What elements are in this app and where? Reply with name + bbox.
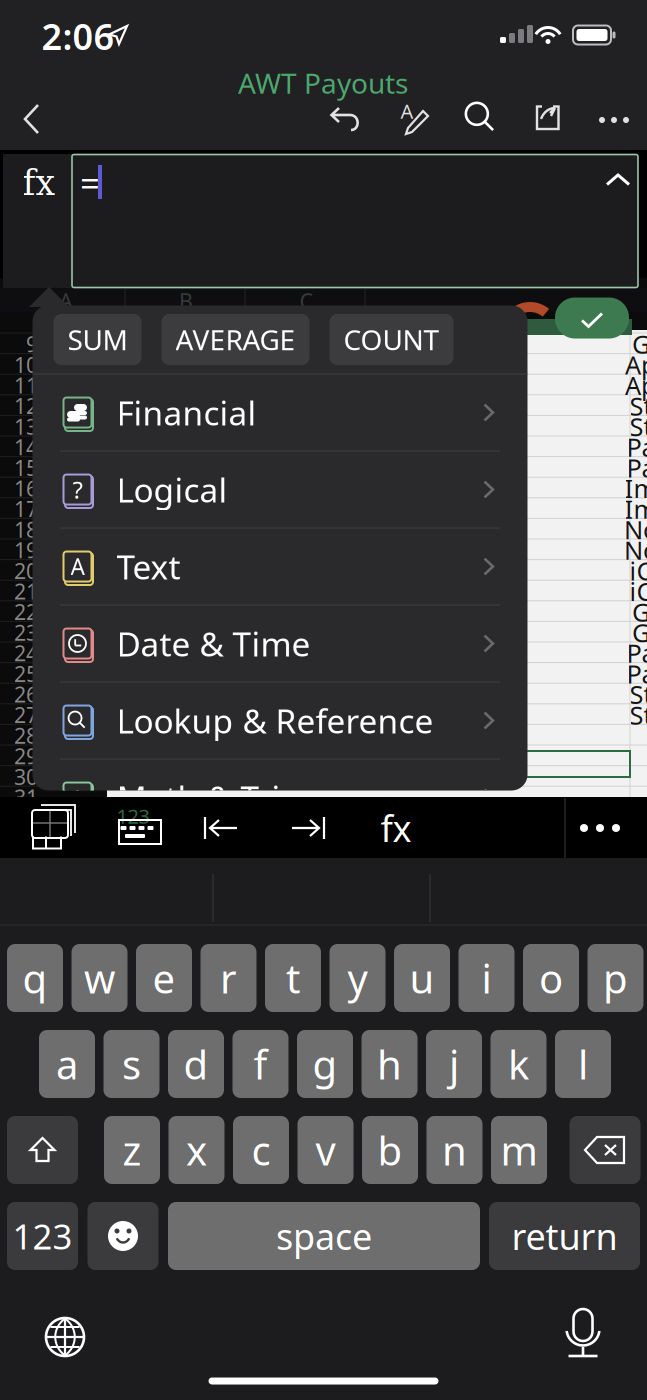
staticText: G	[632, 616, 647, 649]
staticText: fx	[380, 804, 411, 852]
staticText: 11	[14, 371, 38, 399]
button[interactable]: Draw	[390, 95, 438, 143]
staticText: 13	[14, 412, 38, 440]
staticText: Ap	[625, 348, 647, 381]
button[interactable]: r	[200, 944, 256, 1012]
button[interactable]: Dictation	[555, 1303, 611, 1363]
button[interactable]: q	[7, 944, 63, 1012]
button[interactable]: u	[394, 944, 450, 1012]
button[interactable]: x	[168, 1116, 224, 1184]
button[interactable]: e	[136, 944, 192, 1012]
button[interactable]: Shift	[7, 1116, 78, 1184]
button[interactable]: A	[32, 528, 527, 604]
button[interactable]: Back	[8, 95, 56, 143]
staticText: St	[629, 677, 647, 711]
staticText: G	[632, 327, 647, 361]
staticText: =	[80, 160, 100, 206]
staticText: o	[539, 951, 563, 1004]
button[interactable]: SUM	[53, 314, 141, 365]
button[interactable]: c	[233, 1116, 289, 1184]
staticText: p	[603, 951, 628, 1004]
staticText: j	[449, 1037, 459, 1090]
staticText: u	[409, 951, 434, 1004]
button[interactable]: Number keyboard	[114, 804, 166, 852]
staticText: 16	[14, 474, 38, 502]
button[interactable]: d	[168, 1030, 224, 1098]
staticText: Lookup & Reference	[116, 698, 433, 743]
staticText: space	[276, 1212, 372, 1260]
button[interactable]: o	[523, 944, 579, 1012]
button[interactable]: l	[555, 1030, 611, 1098]
button[interactable]: Math & Trig	[32, 759, 527, 835]
staticText: n	[442, 1123, 467, 1176]
button[interactable]: Emoji	[87, 1202, 158, 1270]
button[interactable]: b	[362, 1116, 418, 1184]
button[interactable]: n	[426, 1116, 482, 1184]
button[interactable]: s	[103, 1030, 159, 1098]
button[interactable]: k	[490, 1030, 546, 1098]
staticText: a	[56, 1037, 78, 1090]
button[interactable]: a	[39, 1030, 95, 1098]
button[interactable]: Previous	[195, 804, 247, 852]
staticText: 31	[14, 783, 38, 811]
staticText: iC	[629, 574, 647, 608]
button[interactable]: i	[458, 944, 514, 1012]
staticText: iC	[629, 554, 647, 587]
staticText: Pa	[626, 430, 647, 464]
button[interactable]: v	[297, 1116, 353, 1184]
staticText: B	[179, 287, 193, 315]
button[interactable]: Sheets	[26, 799, 82, 849]
button[interactable]: f	[232, 1030, 288, 1098]
staticText: 30	[14, 762, 38, 791]
button[interactable]: w	[71, 944, 127, 1012]
button[interactable]: Insert function	[370, 804, 422, 852]
staticText: G	[632, 595, 647, 629]
button[interactable]: More options	[569, 804, 631, 852]
button[interactable]: Next	[282, 804, 334, 852]
staticText: 12	[14, 392, 38, 420]
button[interactable]: space	[168, 1202, 480, 1270]
button[interactable]: return	[489, 1202, 640, 1270]
staticText: 28	[14, 721, 38, 749]
staticText: c	[251, 1123, 270, 1176]
button[interactable]: h	[361, 1030, 417, 1098]
button[interactable]: Collapse formula bar	[596, 160, 640, 200]
button[interactable]: Share	[524, 94, 572, 142]
staticText: i	[481, 951, 491, 1004]
button[interactable]: m	[491, 1116, 547, 1184]
staticText: 23	[14, 618, 38, 646]
button[interactable]: Lookup & Reference	[32, 682, 527, 758]
staticText: 14	[14, 433, 38, 461]
button[interactable]: Search	[457, 94, 505, 142]
button[interactable]: j	[426, 1030, 482, 1098]
button[interactable]: p	[587, 944, 643, 1012]
staticText: Pa	[626, 657, 647, 690]
button[interactable]: 123	[7, 1202, 78, 1270]
staticText: SUM	[67, 321, 127, 358]
staticText: No	[624, 533, 647, 567]
button[interactable]: Financial	[32, 374, 527, 450]
staticText: 18	[14, 515, 38, 543]
button[interactable]: ?	[32, 451, 527, 527]
button[interactable]: Functions	[8, 159, 70, 207]
button[interactable]: Delete	[569, 1116, 640, 1184]
staticText: m	[500, 1123, 537, 1176]
staticText: 27	[14, 701, 38, 729]
staticText: return	[511, 1212, 617, 1260]
button[interactable]: t	[265, 944, 321, 1012]
button[interactable]: g	[297, 1030, 353, 1098]
staticText: 24	[14, 639, 38, 667]
button[interactable]: More	[590, 96, 638, 144]
button[interactable]: COUNT	[329, 314, 453, 365]
staticText: s	[122, 1037, 141, 1090]
button[interactable]: AVERAGE	[161, 314, 309, 365]
staticText: AWT Payouts	[238, 64, 408, 102]
button[interactable]: y	[329, 944, 385, 1012]
staticText: No	[624, 513, 647, 546]
button[interactable]: Next keyboard	[37, 1309, 93, 1365]
staticText: Pa	[626, 451, 647, 484]
button[interactable]: Date & Time	[32, 605, 527, 681]
staticText: x	[186, 1123, 207, 1176]
button[interactable]: z	[104, 1116, 160, 1184]
button[interactable]: Undo	[322, 95, 370, 143]
